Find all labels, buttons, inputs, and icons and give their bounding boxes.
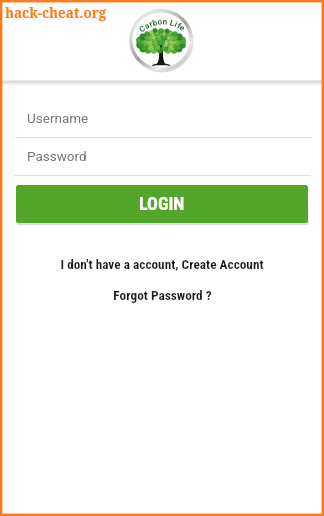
button[interactable]: LOGIN — [16, 185, 308, 223]
button[interactable]: Forgot Password ? — [0, 288, 324, 304]
staticText: hack-cheat.org — [5, 4, 107, 22]
staticText: I don't have a account, Create Account — [60, 257, 264, 273]
button[interactable]: Username — [14, 105, 311, 138]
staticText: Forgot Password ? — [113, 288, 212, 304]
staticText: LOGIN — [139, 193, 185, 214]
staticText: Password — [27, 148, 87, 164]
staticText: Username — [27, 110, 89, 126]
button[interactable]: Password — [14, 143, 311, 176]
button[interactable]: I don't have a account, Create Account — [0, 257, 324, 273]
